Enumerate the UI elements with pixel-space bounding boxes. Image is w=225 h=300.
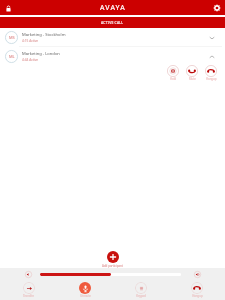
button[interactable]: MS (0, 28, 225, 46)
staticText: Keypad (136, 294, 146, 298)
button[interactable]: Settings (211, 2, 223, 14)
button[interactable]: Keypad (113, 280, 169, 298)
button[interactable]: Volume up (192, 269, 202, 279)
button[interactable]: Collapse (207, 52, 216, 61)
staticText: 4:15 Active (22, 39, 39, 43)
staticText: ACTIVE CALL (101, 20, 124, 25)
button[interactable]: Mute (186, 65, 198, 81)
staticText: Add participant (102, 264, 123, 268)
button[interactable]: Transfer (0, 280, 57, 298)
staticText: ML (9, 54, 15, 59)
button[interactable]: Hold (167, 65, 179, 81)
staticText: Marketing - London (22, 51, 60, 57)
staticText: Unmute (80, 294, 91, 298)
button[interactable]: Secure connection (2, 2, 14, 14)
staticText: Hangup (206, 77, 217, 81)
staticText: MS (9, 35, 15, 40)
button[interactable]: ML (0, 47, 225, 65)
button[interactable]: Volume down (23, 269, 33, 279)
staticText: Marketing - Stockholm (22, 32, 66, 38)
button[interactable]: Expand (207, 33, 216, 42)
staticText: Hold (170, 77, 177, 81)
button[interactable]: Add participant (107, 251, 119, 263)
button[interactable]: Hangup (205, 65, 217, 81)
staticText: Transfer (23, 294, 34, 298)
button[interactable]: Unmute (57, 280, 113, 298)
staticText: Hangup (192, 294, 203, 298)
staticText: AVAYA (100, 3, 126, 13)
staticText: Mute (189, 77, 196, 81)
staticText: 4:44 Active (22, 58, 39, 62)
button[interactable]: Hangup (169, 280, 225, 298)
